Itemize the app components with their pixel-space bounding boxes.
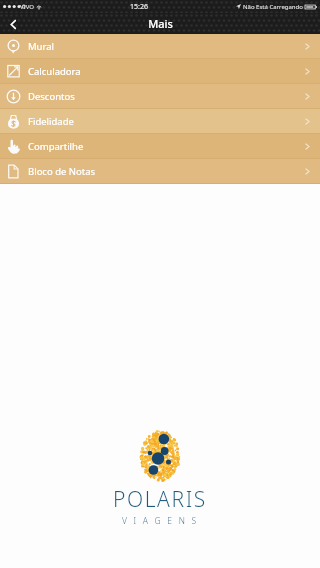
button[interactable]: Voltar: [4, 15, 22, 33]
staticText: POLARIS: [113, 485, 207, 514]
staticText: Mural: [28, 40, 55, 53]
button[interactable]: Descontos: [0, 84, 320, 109]
staticText: Descontos: [28, 90, 75, 103]
button[interactable]: Calculadora: [0, 59, 320, 84]
staticText: VIVO: [20, 3, 34, 11]
staticText: Fidelidade: [28, 115, 74, 128]
staticText: 15:26: [130, 2, 148, 12]
staticText: V I A G E N S: [122, 515, 199, 527]
staticText: Não Está Carregando: [243, 3, 303, 11]
staticText: Compartilhe: [28, 140, 84, 153]
button[interactable]: Mural: [0, 34, 320, 59]
button[interactable]: Fidelidade: [0, 109, 320, 134]
button[interactable]: Bloco de Notas: [0, 159, 320, 184]
staticText: Bloco de Notas: [28, 165, 96, 178]
button[interactable]: Compartilhe: [0, 134, 320, 159]
staticText: Mais: [148, 16, 173, 31]
staticText: Calculadora: [28, 65, 81, 78]
